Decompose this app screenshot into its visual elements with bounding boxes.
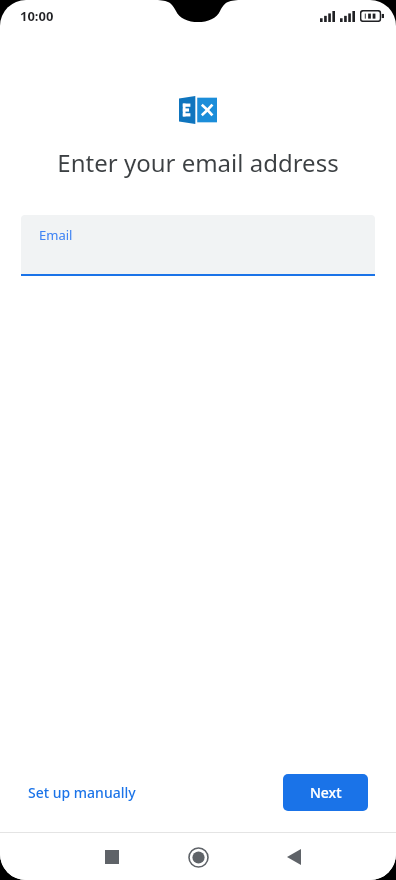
button[interactable]: Back xyxy=(278,841,310,873)
staticText: Enter your email address xyxy=(16,146,380,179)
staticText: Next xyxy=(310,783,342,802)
button[interactable]: Email xyxy=(21,215,375,276)
staticText: 10:00 xyxy=(20,7,54,25)
button[interactable]: Next xyxy=(283,774,368,811)
button[interactable]: Recent apps xyxy=(96,841,128,873)
button[interactable]: Set up manually xyxy=(22,775,142,810)
staticText: Email xyxy=(39,226,73,244)
staticText: Set up manually xyxy=(28,783,136,802)
button[interactable]: Home xyxy=(181,840,215,874)
